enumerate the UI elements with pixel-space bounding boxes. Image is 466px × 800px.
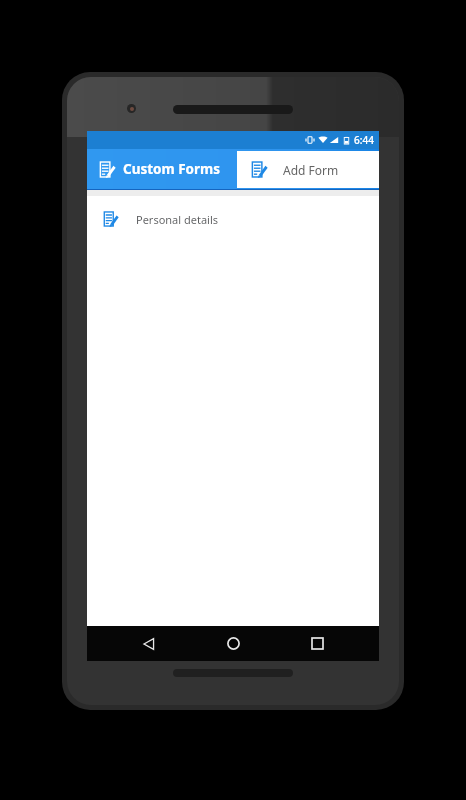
button[interactable]: Home [211,626,255,661]
button[interactable]: Custom Forms [99,149,221,189]
staticText: Custom Forms [123,160,221,178]
staticText: 6:44 [354,133,374,147]
staticText: Add Form [283,162,339,178]
button[interactable]: Personal details [94,204,372,234]
staticText: Personal details [136,212,219,227]
button[interactable]: Back [127,626,171,661]
button[interactable]: Recent apps [295,626,339,661]
button[interactable]: Add Form [237,151,379,188]
